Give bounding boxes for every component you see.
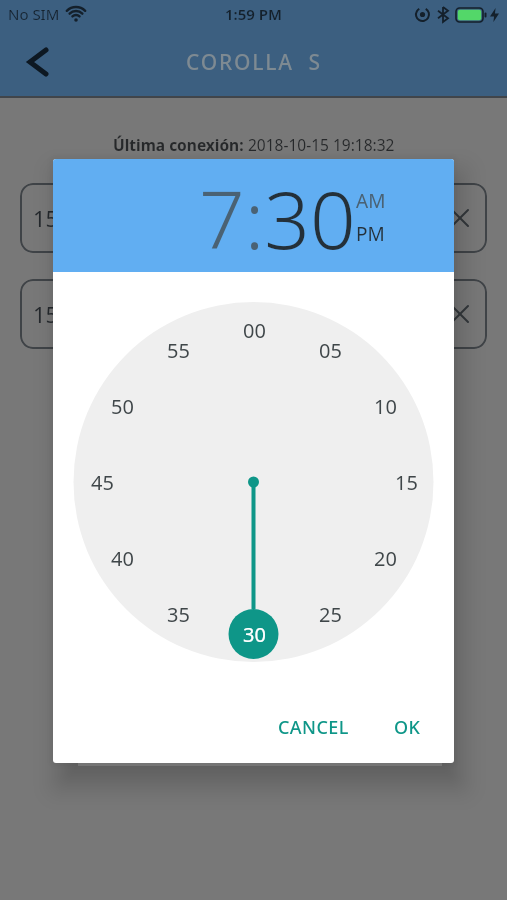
- staticText: 00: [243, 317, 266, 343]
- staticText: 40: [111, 545, 134, 571]
- staticText: 20: [374, 545, 397, 571]
- staticText: 15: [395, 469, 418, 495]
- staticText: 15: [33, 299, 59, 329]
- button[interactable]: 05: [308, 337, 352, 363]
- staticText: No SIM: [8, 4, 60, 24]
- staticText: 05: [319, 337, 342, 363]
- button[interactable]: 30: [232, 621, 276, 647]
- button[interactable]: 15: [384, 469, 428, 495]
- staticText: 45: [91, 469, 114, 495]
- button[interactable]: 25: [308, 601, 352, 627]
- staticText: 2018-10-15 19:18:32: [248, 134, 395, 155]
- staticText: Última conexión:: [113, 134, 248, 155]
- staticText: AM: [356, 188, 386, 214]
- button[interactable]: 15: [20, 183, 487, 253]
- staticText: 50: [111, 393, 134, 419]
- button[interactable]: 45: [80, 469, 124, 495]
- button[interactable]: [19, 44, 55, 80]
- button[interactable]: PM: [356, 221, 385, 247]
- staticText: 30: [243, 621, 266, 647]
- staticText: OK: [394, 715, 421, 740]
- staticText: 7:30: [199, 163, 356, 272]
- staticText: COROLLA S: [186, 48, 322, 77]
- button[interactable]: 35: [156, 601, 200, 627]
- staticText: CANCEL: [278, 715, 349, 740]
- button[interactable]: OK: [382, 709, 432, 745]
- button[interactable]: 20: [363, 545, 407, 571]
- staticText: 55: [167, 337, 190, 363]
- staticText: 10: [374, 393, 397, 419]
- staticText: PM: [356, 221, 385, 247]
- staticText: 1:59 PM: [225, 4, 282, 24]
- staticText: 35: [167, 601, 190, 627]
- button[interactable]: AM: [356, 188, 386, 214]
- staticText: 25: [319, 601, 342, 627]
- button[interactable]: 10: [363, 393, 407, 419]
- staticText: 15: [33, 203, 59, 233]
- button[interactable]: 15: [20, 279, 487, 349]
- button[interactable]: 00: [232, 317, 276, 343]
- button[interactable]: CANCEL: [273, 709, 353, 745]
- button[interactable]: 40: [100, 545, 144, 571]
- button[interactable]: 50: [100, 393, 144, 419]
- button[interactable]: 55: [156, 337, 200, 363]
